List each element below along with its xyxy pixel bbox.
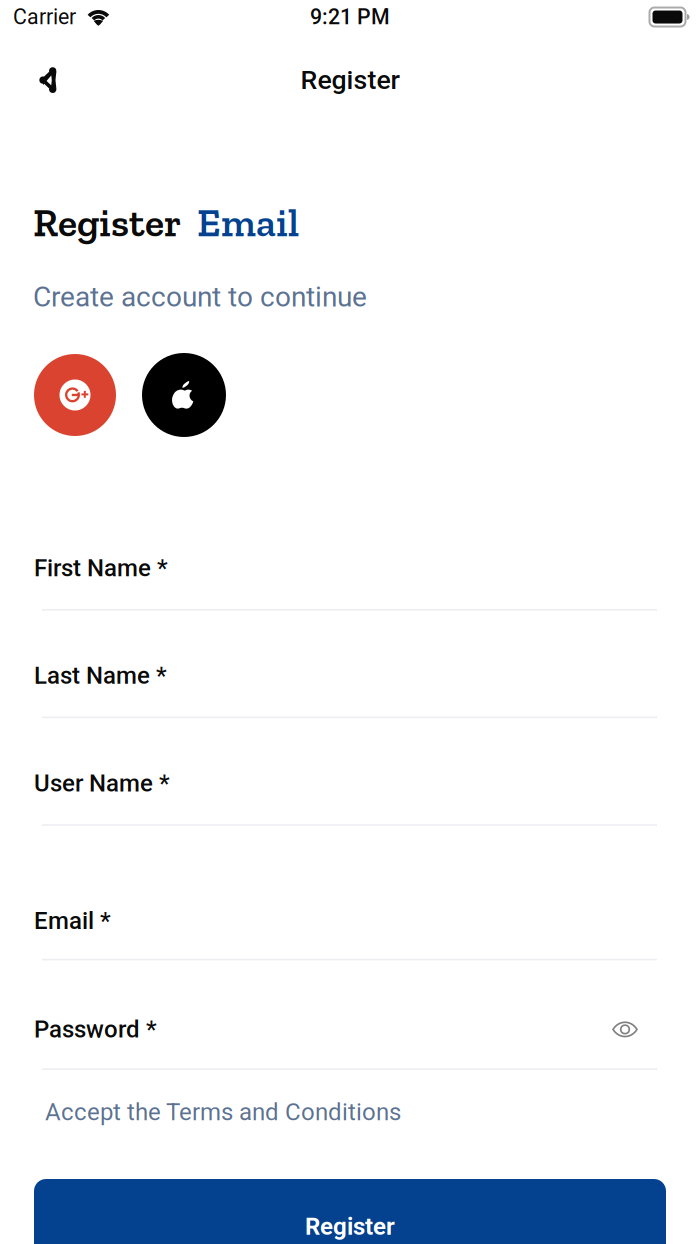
staticText: Register xyxy=(305,1212,395,1240)
button[interactable]: Sign up with Apple xyxy=(142,353,226,437)
button[interactable]: Sign up with Google xyxy=(34,354,116,436)
staticText: Create account to continue xyxy=(33,281,367,313)
staticText: Register xyxy=(300,64,399,96)
button[interactable]: Register xyxy=(34,1179,666,1244)
button[interactable]: Show password xyxy=(604,1011,646,1047)
staticText: Password * xyxy=(34,1015,157,1043)
staticText: First Name * xyxy=(34,554,168,582)
staticText: User Name * xyxy=(34,769,170,797)
button[interactable]: Back xyxy=(0,50,81,110)
staticText: Accept the Terms and Conditions xyxy=(45,1098,401,1126)
button[interactable]: Accept the Terms and Conditions xyxy=(45,1091,401,1133)
staticText: Carrier xyxy=(13,4,76,29)
staticText: Last Name * xyxy=(34,661,167,690)
staticText: 9:21 PM xyxy=(310,4,390,29)
staticText: Email * xyxy=(34,907,111,935)
staticText: Email xyxy=(197,198,299,246)
staticText: Register xyxy=(33,198,181,246)
